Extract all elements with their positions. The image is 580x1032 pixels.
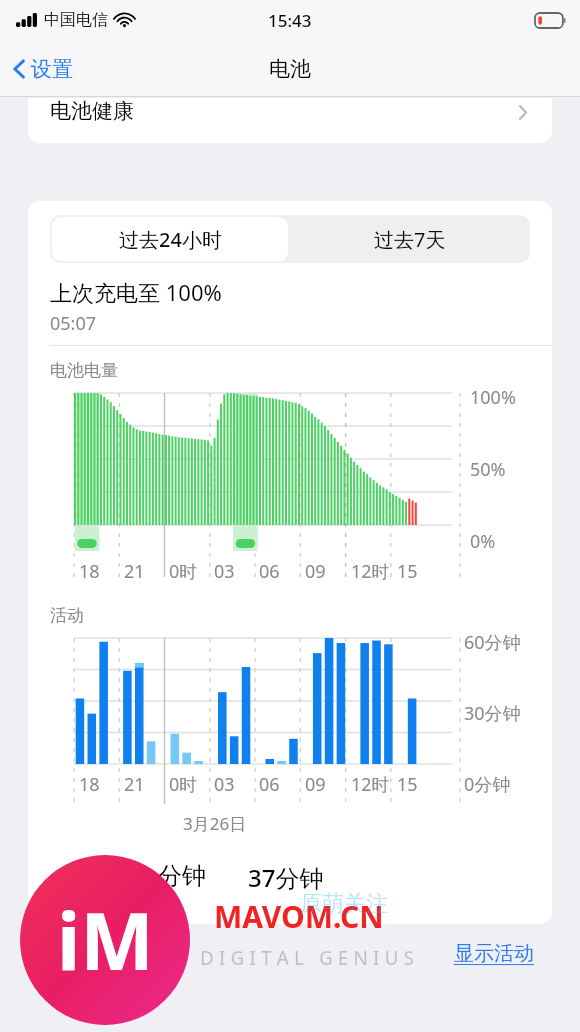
staticText: 18 [79,559,100,584]
staticText: 09 [305,559,326,584]
staticText: 原萌关注 [300,890,388,918]
staticText: 09 [305,772,326,797]
staticText: 电池健康 [50,98,134,124]
staticText: 15:43 [268,9,312,32]
staticText: 电池电量 [50,360,118,381]
staticText: 37分钟 [248,861,324,894]
staticText: 18 [79,772,100,797]
staticText: 12时 [351,772,390,797]
staticText: MAVOM.CN [214,896,384,937]
staticText: 03 [214,559,235,584]
staticText: 过去7天 [374,226,446,253]
staticText: 21 [124,559,145,584]
staticText: 60分钟 [464,630,521,655]
staticText: 12时 [351,559,390,584]
staticText: 0时 [169,559,198,584]
button[interactable]: 返回 [0,50,85,88]
staticText: 设置 [31,56,73,82]
staticText: 06 [259,772,280,797]
staticText: 15 [397,559,418,584]
staticText: App的电池用量 [46,940,184,967]
staticText: 活动 [50,605,84,626]
staticText: 显示活动 [454,941,534,966]
button[interactable]: 显示活动 [454,941,534,966]
button[interactable]: 过去7天 [290,215,530,263]
button[interactable]: 电池健康 [28,98,552,143]
staticText: 30分钟 [464,701,521,726]
staticText: 电池 [269,56,311,82]
staticText: 06 [259,559,280,584]
staticText: 03 [214,772,235,797]
staticText: 100% [470,385,516,410]
staticText: 21 [124,772,145,797]
staticText: 0分钟 [464,772,511,797]
staticText: iM [57,887,154,993]
button[interactable]: 过去24小时 [52,217,288,261]
staticText: D I G I T A L G E N I U S [200,945,414,971]
staticText: 3月26日 [183,812,247,835]
staticText: 中国电信 [44,10,108,30]
staticText: 50% [470,457,506,482]
staticText: 15 [397,772,418,797]
staticText: 0时 [169,772,198,797]
staticText: 分钟 [158,861,206,891]
staticText: 0% [470,529,496,554]
other: 返回 [12,58,25,80]
staticText: 05:07 [50,311,97,336]
staticText: 上次充电至 100% [50,277,222,307]
staticText: 过去24小时 [119,226,222,253]
